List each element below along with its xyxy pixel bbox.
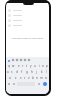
staticText: d [16, 70, 18, 74]
button[interactable]: j [34, 69, 39, 75]
button[interactable]: a [6, 69, 10, 75]
button[interactable] [6, 18, 49, 23]
staticText: n [36, 76, 38, 80]
staticText: e [18, 64, 20, 68]
button[interactable]: Shift [6, 75, 13, 81]
button[interactable]: g [24, 69, 29, 75]
button[interactable] [6, 23, 49, 28]
staticText: p [46, 64, 48, 68]
button[interactable]: h [29, 69, 34, 75]
staticText: q [8, 64, 10, 68]
button[interactable]: f [19, 69, 24, 75]
button[interactable]: r [21, 63, 25, 69]
staticText: l [46, 70, 47, 74]
button[interactable]: Symbols [6, 81, 11, 87]
staticText: o [42, 64, 44, 68]
button[interactable]: o [41, 63, 45, 69]
button[interactable]: w [11, 63, 16, 69]
button[interactable]: c [23, 75, 27, 81]
staticText: z [15, 76, 17, 80]
staticText: u [34, 64, 36, 68]
button[interactable]: q [6, 63, 11, 69]
button[interactable] [6, 13, 49, 18]
button[interactable]: k [39, 69, 44, 75]
staticText: c [24, 76, 26, 80]
staticText: v [28, 76, 30, 80]
staticText: f [21, 70, 23, 74]
button[interactable]: s [10, 69, 14, 75]
button[interactable]: m [39, 75, 43, 81]
button[interactable]: Google [7, 59, 10, 62]
staticText: s [11, 70, 13, 74]
button[interactable]: v [27, 75, 31, 81]
staticText: h [31, 70, 33, 74]
button[interactable]: i [37, 63, 41, 69]
button[interactable]: Backspace [43, 75, 49, 81]
staticText: i [39, 64, 40, 68]
staticText: t [26, 64, 28, 68]
button[interactable]: t [25, 63, 29, 69]
staticText: Consider these to be invited [6, 36, 49, 39]
staticText: k [41, 70, 43, 74]
button[interactable]: p [45, 63, 49, 69]
button[interactable]: Period [36, 81, 41, 87]
staticText: r [22, 64, 24, 68]
button[interactable]: n [35, 75, 39, 81]
button[interactable]: z [13, 75, 18, 81]
staticText: a [7, 70, 9, 74]
button[interactable]: b [31, 75, 35, 81]
button[interactable]: Emoji [11, 81, 16, 87]
staticText: w [12, 64, 15, 68]
button[interactable]: u [33, 63, 37, 69]
button[interactable]: x [18, 75, 23, 81]
button[interactable]: Send [41, 81, 49, 87]
button[interactable]: y [29, 63, 33, 69]
staticText: g [26, 70, 28, 74]
button[interactable] [6, 8, 49, 13]
button[interactable]: d [14, 69, 19, 75]
button[interactable]: l [44, 69, 49, 75]
staticText: x [20, 76, 22, 80]
staticText: j [36, 70, 37, 74]
staticText: b [32, 76, 34, 80]
staticText: m [40, 76, 43, 80]
button[interactable]: e [16, 63, 21, 69]
staticText: y [30, 64, 32, 68]
